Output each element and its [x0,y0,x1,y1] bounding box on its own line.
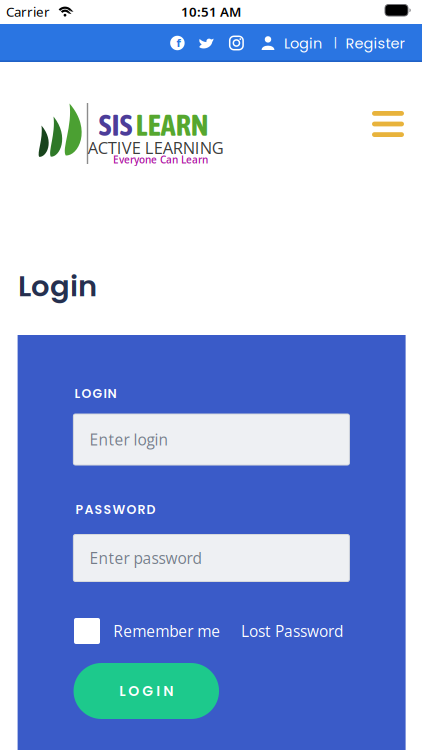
staticText: Register [345,33,404,54]
staticText: L O G I N [75,385,117,402]
button[interactable]: Enter login [73,414,349,465]
staticText: Lost Password [241,620,343,641]
button[interactable]: L O G I N [73,663,219,719]
staticText: Remember me [113,620,220,641]
staticText: SIS [99,108,133,142]
button[interactable] [192,30,220,56]
staticText: L O G I N [119,681,173,701]
button[interactable]: Enter password [73,534,349,581]
button[interactable]: Remember me [109,616,224,645]
staticText: P A S S W O R D [76,501,156,518]
staticText: Enter password [89,547,201,568]
button[interactable] [223,29,250,56]
staticText: Login [18,266,97,306]
button[interactable]: Register [341,29,408,58]
staticText: LEARN [136,108,209,142]
button[interactable]: Login [257,29,326,58]
staticText: Carrier [6,3,50,20]
staticText: Everyone Can Learn [113,153,208,166]
staticText: Login [284,33,322,54]
staticText: f [176,38,180,49]
button[interactable] [364,103,412,145]
staticText: Enter login [89,429,168,450]
button[interactable] [70,614,104,648]
button[interactable]: Lost Password [237,616,347,645]
button[interactable]: f [164,29,191,56]
staticText: 10:51 AM [181,3,241,20]
staticText: ACTIVE LEARNING [88,136,224,159]
staticText: | [333,34,337,52]
